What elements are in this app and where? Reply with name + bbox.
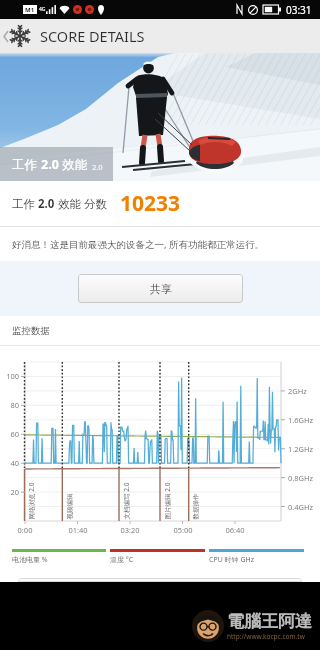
staticText: 共享 (150, 282, 172, 296)
staticText: 80 (0, 400, 19, 410)
staticText: 电池电量 % (12, 555, 48, 565)
staticText: 10233 (120, 189, 181, 218)
staticText: 工作 (12, 196, 38, 212)
staticText: 文档编写 2.0 (121, 482, 130, 519)
staticText: 视频编辑 (65, 493, 73, 519)
staticText: 100 (0, 371, 19, 381)
staticText: 温度 °C (110, 555, 134, 565)
staticText: 1.6GHz (288, 415, 314, 425)
staticText: 03:31 (286, 3, 312, 17)
staticText: 图片编辑 2.0 (162, 482, 171, 519)
staticText: 0:00 (11, 525, 39, 535)
staticText: 2.0 (38, 196, 55, 212)
staticText: 2.0 (41, 156, 59, 173)
staticText: SCORE DETAILS (40, 26, 145, 46)
staticText: 2GHz (288, 386, 307, 396)
staticText: 监控数据 (12, 325, 50, 337)
button[interactable]: Back (3, 19, 30, 53)
staticText: 01:40 (64, 525, 92, 535)
staticText: 效能 分数 (55, 196, 107, 212)
staticText: 電腦王阿達 (227, 611, 312, 632)
staticText: 0.4GHz (288, 502, 314, 512)
staticText: 2.0 (92, 162, 103, 172)
staticText: 20 (0, 487, 19, 497)
button[interactable]: 共享 (78, 274, 243, 303)
staticText: 4G (39, 6, 46, 13)
staticText: M1 (25, 6, 35, 14)
staticText: 03:20 (116, 525, 144, 535)
staticText: 数据操作 (191, 493, 199, 519)
staticText: 好消息！这是目前最强大的设备之一, 所有功能都正常运行。 (12, 238, 265, 251)
staticText: 1.2GHz (288, 444, 314, 454)
staticText: 0.8GHz (288, 473, 314, 483)
staticText: 05:00 (169, 525, 197, 535)
staticText: 06:40 (221, 525, 249, 535)
staticText: http://www.kocpc.com.tw (227, 632, 305, 641)
staticText: CPU 时钟 GHz (209, 555, 254, 565)
staticText: 网络浏览 2.0 (26, 482, 35, 519)
staticText: 工作 (12, 156, 41, 173)
staticText: 效能 (59, 156, 88, 173)
staticText: 40 (0, 458, 19, 468)
staticText: 60 (0, 429, 19, 439)
